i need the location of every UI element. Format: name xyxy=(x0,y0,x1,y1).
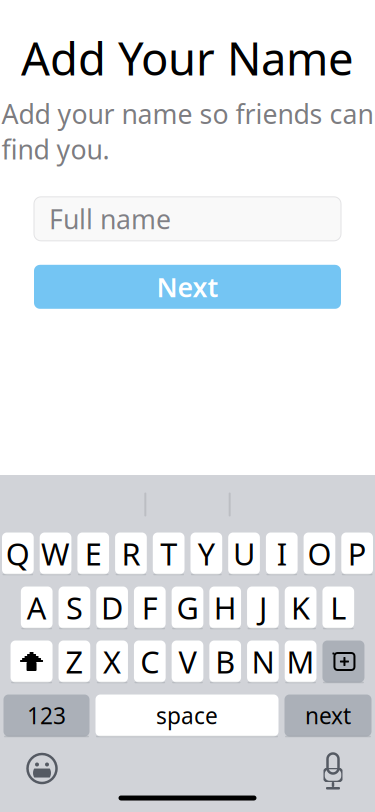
button[interactable]: H xyxy=(209,586,241,628)
button[interactable]: Q xyxy=(2,532,34,574)
button[interactable]: T xyxy=(153,532,184,574)
button[interactable]: W xyxy=(40,532,71,574)
staticText: K xyxy=(291,587,310,628)
button[interactable]: Next xyxy=(34,265,341,309)
staticText: M xyxy=(287,641,315,682)
staticText: Z xyxy=(65,641,83,682)
staticText: B xyxy=(215,641,235,682)
staticText: H xyxy=(214,587,237,628)
staticText: C xyxy=(140,641,159,682)
staticText: X xyxy=(103,641,121,682)
staticText: I xyxy=(277,533,287,574)
button[interactable]: 123 xyxy=(3,694,89,736)
staticText: Add Your Name xyxy=(21,28,354,88)
staticText: Y xyxy=(198,533,215,574)
button[interactable]: G xyxy=(172,586,203,628)
staticText: F xyxy=(142,587,158,628)
staticText: G xyxy=(176,587,198,628)
button[interactable]: E xyxy=(77,532,109,574)
button[interactable]: C xyxy=(134,640,166,682)
button[interactable]: Emoji xyxy=(20,746,64,790)
button[interactable]: I xyxy=(266,532,298,574)
button[interactable]: B xyxy=(209,640,241,682)
staticText: Q xyxy=(6,533,30,574)
button[interactable]: R xyxy=(115,532,147,574)
button[interactable]: U xyxy=(228,532,260,574)
button[interactable]: Shift xyxy=(11,640,53,682)
staticText: S xyxy=(66,587,83,628)
staticText: next xyxy=(305,700,351,730)
staticText: Full name xyxy=(49,201,171,236)
button[interactable]: space xyxy=(95,694,278,736)
staticText: U xyxy=(233,533,255,574)
button[interactable]: V xyxy=(172,640,203,682)
button[interactable]: Delete xyxy=(322,640,364,682)
button[interactable]: Dictation xyxy=(311,746,355,790)
button[interactable]: next xyxy=(284,694,371,736)
button[interactable]: L xyxy=(322,586,354,628)
button[interactable]: N xyxy=(247,640,279,682)
staticText: N xyxy=(251,641,274,682)
button[interactable]: K xyxy=(285,586,316,628)
button[interactable]: S xyxy=(59,586,90,628)
button[interactable]: A xyxy=(21,586,53,628)
staticText: Add your name so friends can find you. xyxy=(1,96,373,167)
staticText: L xyxy=(330,587,346,628)
button[interactable]: O xyxy=(304,532,335,574)
staticText: P xyxy=(348,533,367,574)
button[interactable]: J xyxy=(247,586,279,628)
button[interactable]: Y xyxy=(190,532,222,574)
button[interactable]: P xyxy=(341,532,373,574)
staticText: V xyxy=(178,641,196,682)
button[interactable]: X xyxy=(96,640,128,682)
button[interactable]: Full name xyxy=(34,197,341,241)
staticText: W xyxy=(41,533,70,574)
staticText: Next xyxy=(156,269,218,304)
button[interactable]: F xyxy=(134,586,166,628)
button[interactable]: Z xyxy=(59,640,90,682)
staticText: space xyxy=(156,700,218,730)
staticText: D xyxy=(101,587,123,628)
staticText: T xyxy=(160,533,177,574)
staticText: O xyxy=(307,533,331,574)
staticText: E xyxy=(85,533,102,574)
button[interactable]: D xyxy=(96,586,128,628)
staticText: A xyxy=(27,587,47,628)
staticText: J xyxy=(259,587,267,628)
button[interactable]: M xyxy=(285,640,316,682)
staticText: 123 xyxy=(27,700,66,730)
staticText: R xyxy=(121,533,140,574)
